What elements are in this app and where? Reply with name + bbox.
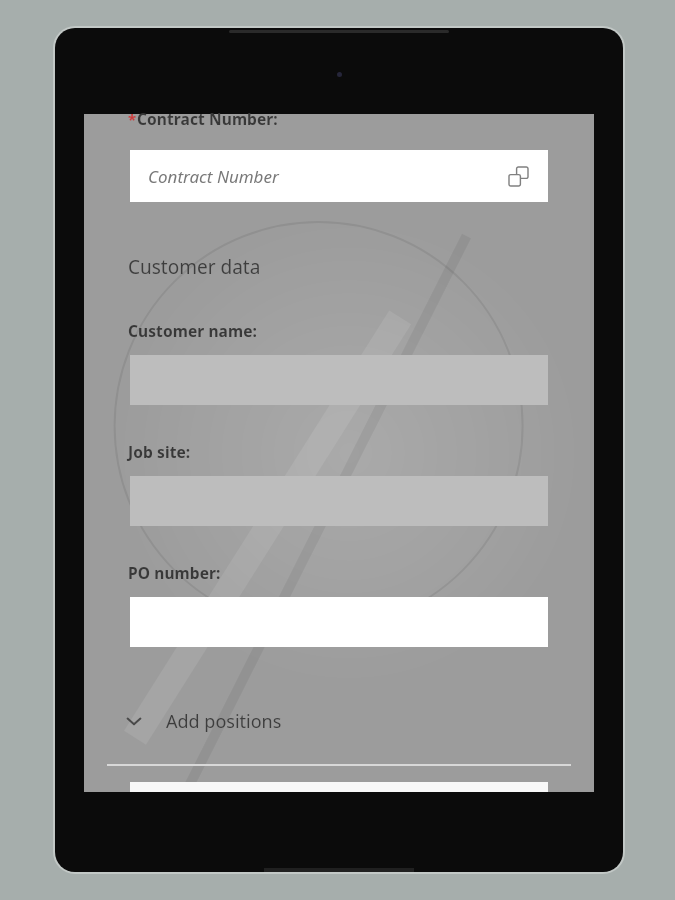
staticText: Customer name: [128, 320, 258, 341]
staticText: Add positions [166, 709, 282, 734]
staticText: Job site: [128, 441, 191, 462]
staticText: Customer data [128, 254, 261, 280]
button[interactable]: Contract Number [130, 150, 548, 202]
button[interactable]: Copy contract number [502, 160, 534, 192]
button[interactable]: Add positions [84, 699, 594, 743]
staticText: PO number: [128, 562, 221, 583]
staticText: Contract Number: [137, 108, 278, 129]
staticText: * [128, 109, 137, 129]
staticText: Contract Number [148, 165, 279, 188]
